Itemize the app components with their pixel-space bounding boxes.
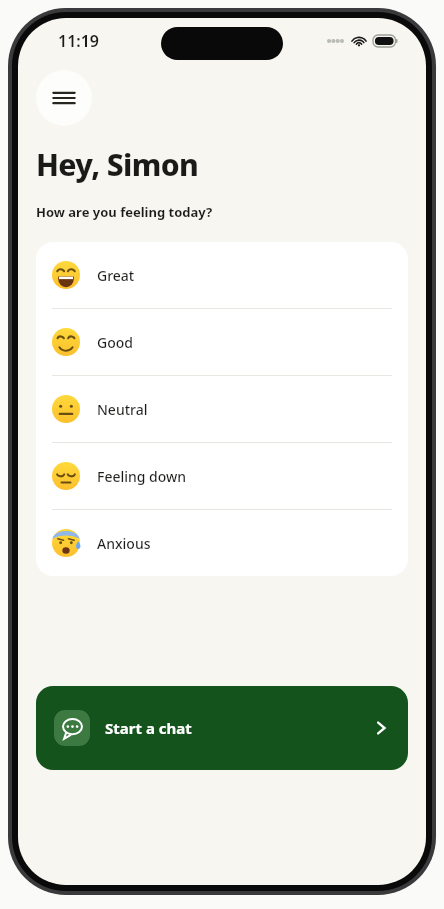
button[interactable]: Start a chat bbox=[36, 686, 408, 770]
staticText: Feeling down bbox=[97, 467, 187, 486]
staticText: Hey, Simon bbox=[36, 144, 199, 185]
button[interactable]: Menu bbox=[36, 70, 92, 126]
staticText: Neutral bbox=[97, 400, 148, 419]
staticText: 11:19 bbox=[58, 30, 100, 52]
staticText: How are you feeling today? bbox=[36, 203, 213, 221]
staticText: Good bbox=[97, 333, 133, 352]
button[interactable]: Feeling down bbox=[36, 443, 408, 509]
staticText: Great bbox=[97, 266, 135, 285]
staticText: Anxious bbox=[97, 534, 151, 553]
staticText: Start a chat bbox=[105, 718, 192, 738]
button[interactable]: Neutral bbox=[36, 376, 408, 442]
button[interactable]: Anxious bbox=[36, 510, 408, 576]
button[interactable]: Good bbox=[36, 309, 408, 375]
button[interactable]: Great bbox=[36, 242, 408, 308]
